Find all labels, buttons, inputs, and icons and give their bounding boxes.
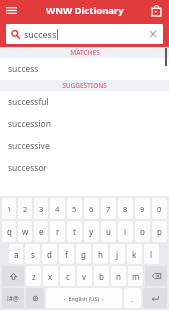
button[interactable]: 5 [67,198,82,219]
button[interactable]: Shift [2,266,24,286]
staticText: . [131,293,134,304]
button[interactable]: d [42,244,57,264]
staticText: successive [8,140,50,152]
staticText: successful [8,96,49,108]
staticText: success [8,63,39,75]
staticText: 0 [157,204,162,214]
button[interactable]: successful [0,91,169,113]
button[interactable]: 4 [50,198,65,219]
staticText: b [99,271,104,282]
staticText: p [157,226,162,237]
staticText: g [81,249,86,260]
button[interactable]: 6 [84,198,99,219]
button[interactable]: v [77,266,92,286]
staticText: l [150,249,153,260]
button[interactable]: z [26,266,41,286]
button[interactable]: succession [0,113,169,135]
staticText: s [31,249,35,260]
staticText: r [56,226,60,237]
staticText: 7 [106,204,111,214]
button[interactable]: Clear search [145,26,161,42]
staticText: n [116,271,121,282]
button[interactable]: q [2,221,16,242]
button[interactable]: e [34,221,48,242]
button[interactable]: 9 [135,198,150,219]
staticText: i [124,226,127,237]
staticText: e [39,226,44,237]
staticText: z [32,271,36,282]
button[interactable]: ‹ English (US) › [46,288,122,308]
button[interactable]: 1 [2,198,16,219]
button[interactable]: 7 [101,198,116,219]
button[interactable]: w [18,221,32,242]
button[interactable]: y [84,221,99,242]
button[interactable]: Keyboard settings [26,288,44,308]
staticText: o [140,226,145,237]
button[interactable]: . [124,288,141,308]
button[interactable]: i [118,221,133,242]
staticText: success [24,28,57,40]
button[interactable]: m [128,266,143,286]
staticText: 1 [7,204,12,214]
button[interactable]: b [94,266,109,286]
staticText: y [89,226,94,237]
button[interactable]: successive [0,135,169,157]
button[interactable]: s [25,244,40,264]
staticText: h [98,249,103,260]
staticText: 3 [39,204,44,214]
staticText: SUGGESTIONS [62,81,107,90]
staticText: MATCHES [70,48,100,57]
staticText: q [7,226,12,237]
button[interactable]: l [144,244,159,264]
button[interactable]: o [135,221,150,242]
staticText: m [132,271,140,282]
button[interactable]: j [110,244,125,264]
staticText: 9 [140,204,145,214]
button[interactable]: p [152,221,167,242]
button[interactable]: x [43,266,58,286]
staticText: v [82,271,87,282]
button[interactable]: r [50,221,65,242]
button[interactable]: Enter [143,288,167,308]
staticText: x [48,271,53,282]
staticText: WNW Dictionary [46,4,124,17]
staticText: !#@ [7,294,19,303]
button[interactable]: t [67,221,82,242]
staticText: k [132,249,137,260]
button[interactable]: successor [0,157,169,179]
staticText: 6 [89,204,94,214]
button[interactable]: n [111,266,126,286]
button[interactable]: 0 [152,198,167,219]
button[interactable]: g [76,244,91,264]
button[interactable]: a [9,244,23,264]
staticText: 4 [55,204,60,214]
staticText: f [65,249,68,260]
staticText: t [73,226,76,237]
button[interactable]: 3 [34,198,48,219]
staticText: u [106,226,111,237]
staticText: successor [8,162,48,174]
staticText: d [47,249,52,260]
staticText: a [14,249,19,260]
staticText: 2 [23,204,28,214]
staticText: c [66,271,70,282]
staticText: w [22,226,29,237]
staticText: 8 [123,204,128,214]
staticText: succession [8,118,52,130]
button[interactable]: Backspace [145,266,167,286]
button[interactable]: u [101,221,116,242]
button[interactable]: Menu [3,2,20,19]
button[interactable]: k [127,244,142,264]
staticText: 5 [72,204,77,214]
button[interactable]: success [0,58,169,80]
button[interactable]: f [59,244,74,264]
staticText: j [116,249,119,260]
button[interactable]: 8 [118,198,133,219]
button[interactable]: 2 [18,198,32,219]
button[interactable]: c [60,266,75,286]
button[interactable]: h [93,244,108,264]
button[interactable]: success [6,24,163,44]
button[interactable]: Store [148,2,165,19]
button[interactable]: !#@ [2,288,24,308]
staticText: ‹ English (US) › [64,295,104,302]
